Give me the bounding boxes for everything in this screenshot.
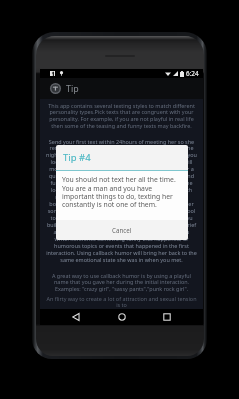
staticText: Tip #4 xyxy=(63,151,91,164)
button[interactable]: Recents xyxy=(157,309,177,325)
staticText: Cancel xyxy=(112,226,132,234)
button[interactable]: Cancel xyxy=(56,220,188,240)
staticText: A great way to use callback humor is by … xyxy=(46,272,197,293)
staticText: You should not text her all the time. Yo… xyxy=(62,175,181,209)
button[interactable]: Back xyxy=(66,309,86,325)
button[interactable]: App logo xyxy=(50,83,61,94)
staticText: Tip xyxy=(66,83,79,95)
staticText: This app contains several texting styles… xyxy=(46,102,197,130)
staticText: 6:24 xyxy=(186,69,199,78)
button[interactable]: Home xyxy=(112,309,132,325)
staticText: Send your first text within 24hours of m… xyxy=(46,138,197,264)
staticText: An flirty way to create a lot of attract… xyxy=(46,295,197,309)
